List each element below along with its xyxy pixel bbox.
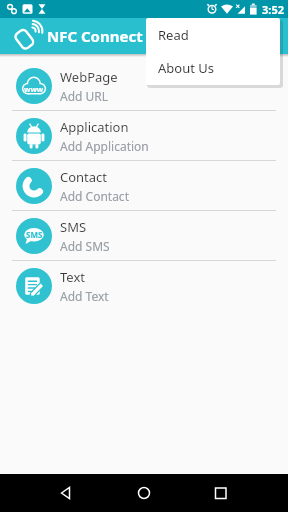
staticText: About Us [158,59,215,77]
staticText: Application [60,118,129,136]
button[interactable] [96,474,192,512]
button[interactable]: Application [0,111,288,160]
button[interactable]: Read [146,18,280,51]
button[interactable]: About Us [146,51,280,85]
button[interactable]: SMS [0,211,288,260]
staticText: WebPage [60,68,118,86]
staticText: Add Application [60,138,149,154]
staticText: Add URL [60,88,109,104]
staticText: NFC Connect [47,26,143,46]
staticText: Text [60,268,85,286]
button[interactable]: Text [0,261,288,310]
staticText: 3:52 [262,2,284,17]
staticText: SMS [60,218,87,236]
staticText: Contact [60,168,108,186]
staticText: Add Contact [60,188,129,204]
staticText: www [24,84,44,94]
staticText: Add SMS [60,238,110,254]
button[interactable] [0,474,96,512]
button[interactable] [192,474,288,512]
button[interactable]: www [0,61,288,110]
staticText: Add Text [60,288,109,304]
staticText: SMS [26,229,43,240]
button[interactable]: Contact [0,161,288,210]
staticText: Read [158,26,189,44]
